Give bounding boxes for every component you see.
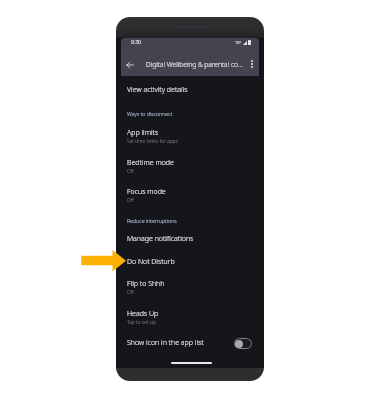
button[interactable] <box>121 123 259 150</box>
staticText: 9:30 <box>131 39 141 46</box>
staticText: Flip to Shhh <box>127 279 165 289</box>
button[interactable]: Back <box>122 57 137 72</box>
button[interactable] <box>121 152 259 180</box>
button[interactable] <box>121 302 259 330</box>
staticText: Off <box>127 197 134 204</box>
button[interactable] <box>121 331 259 355</box>
staticText: Tap to set up <box>127 319 156 326</box>
staticText: Do Not Disturb <box>127 257 175 267</box>
button[interactable] <box>121 78 259 102</box>
staticText: Ways to disconnect <box>127 110 173 117</box>
button[interactable] <box>121 181 259 209</box>
staticText: Off <box>127 168 134 175</box>
staticText: Reduce interruptions <box>127 217 177 224</box>
staticText: 15° <box>235 40 242 45</box>
staticText: Heads Up <box>127 309 159 319</box>
button[interactable] <box>121 228 259 250</box>
button[interactable] <box>121 251 259 273</box>
staticText: Focus mode <box>127 187 166 197</box>
staticText: Show icon in the app list <box>127 338 204 348</box>
button[interactable] <box>121 274 259 301</box>
staticText: App limits <box>127 128 159 138</box>
staticText: Bedtime mode <box>127 158 174 168</box>
staticText: View activity details <box>127 85 188 95</box>
staticText: Off <box>127 289 134 296</box>
staticText: Digital Wellbeing & parental co... <box>146 60 243 69</box>
staticText: Manage notifications <box>127 234 194 244</box>
button[interactable]: More options <box>244 56 260 72</box>
staticText: Set time limits for apps <box>127 138 178 145</box>
